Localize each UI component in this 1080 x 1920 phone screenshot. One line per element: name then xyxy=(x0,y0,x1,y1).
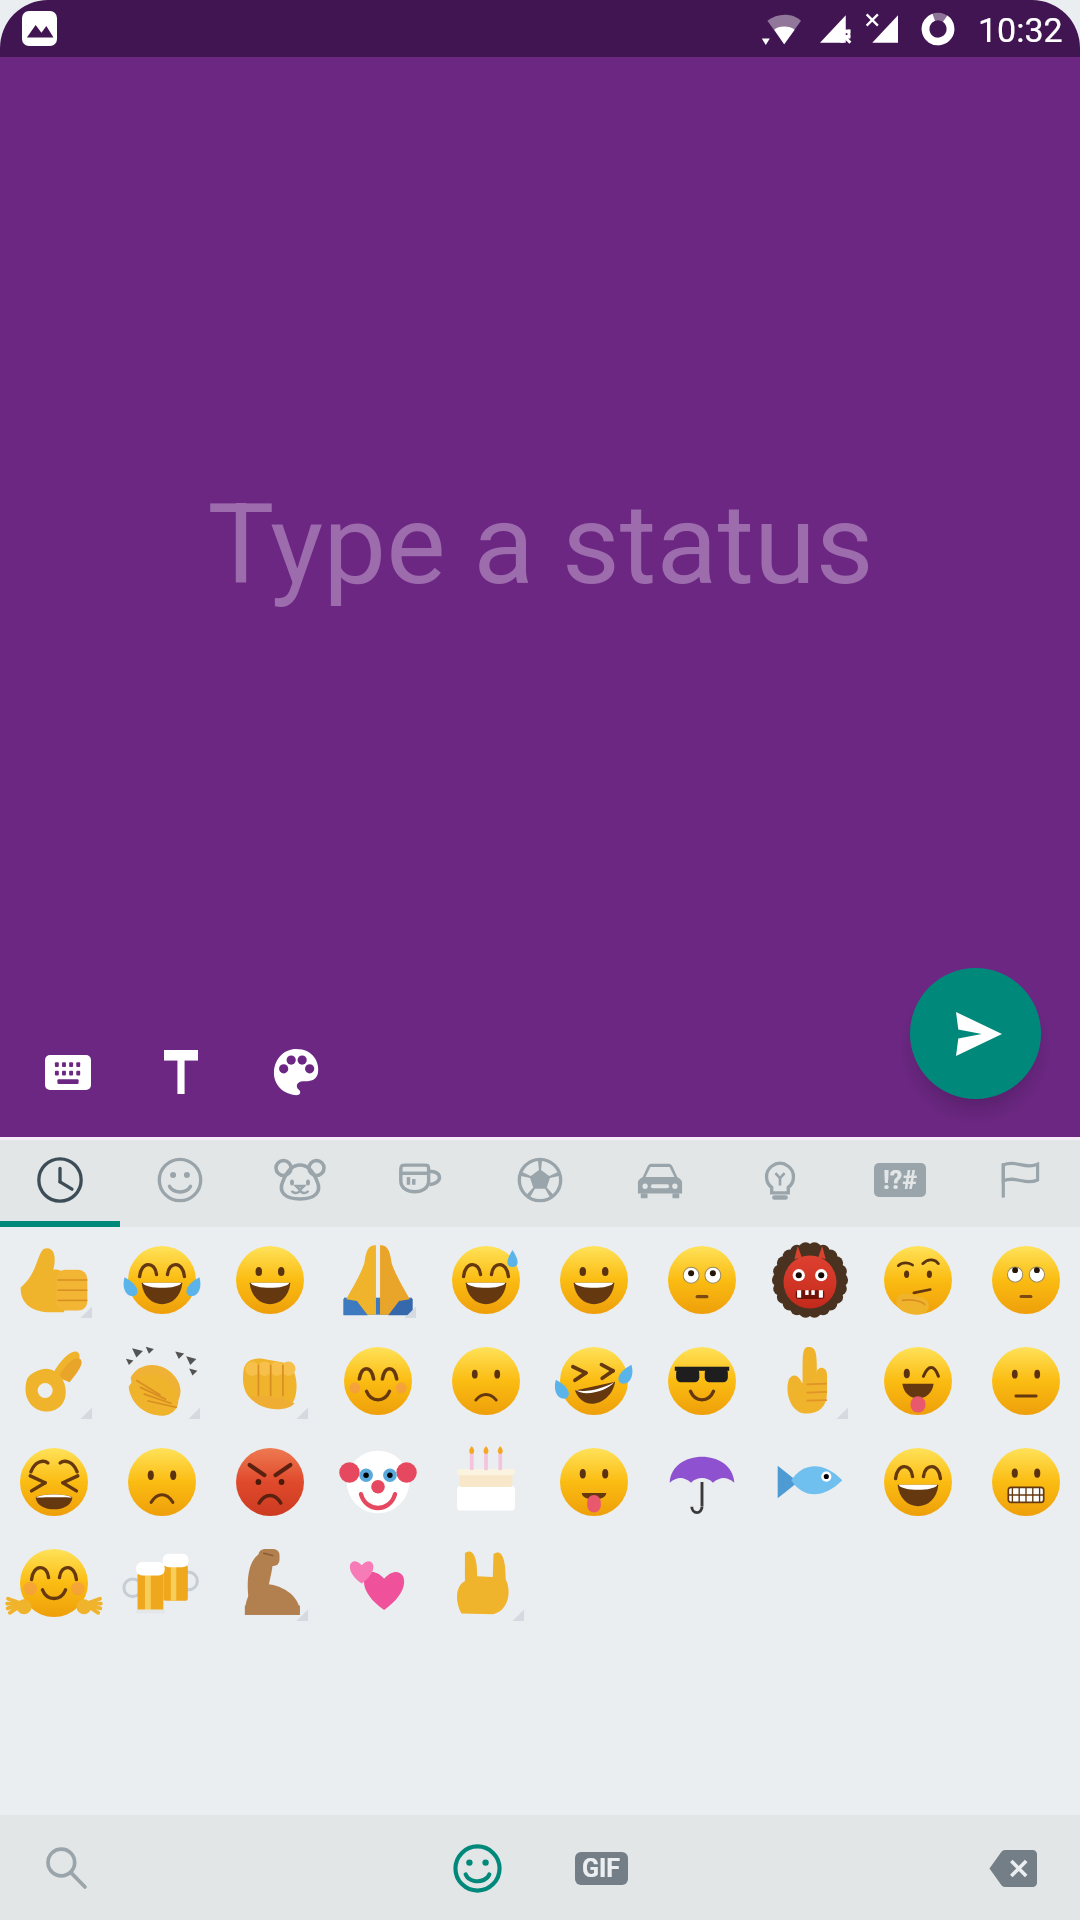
button[interactable]: Recent xyxy=(0,1140,120,1227)
button[interactable]: Backspace xyxy=(969,1824,1057,1912)
staticText: 10:32 xyxy=(978,10,1063,50)
button[interactable]: Text style xyxy=(142,1033,220,1111)
button[interactable]: Activity xyxy=(480,1140,600,1227)
button[interactable]: Send xyxy=(910,968,1041,1099)
button[interactable]: Smileys xyxy=(120,1140,240,1227)
button[interactable]: Emoji xyxy=(433,1824,521,1912)
button[interactable]: Objects xyxy=(720,1140,840,1227)
button[interactable]: Keyboard xyxy=(29,1033,107,1111)
staticText: Type a status xyxy=(207,479,874,610)
button[interactable]: Travel xyxy=(600,1140,720,1227)
button[interactable]: Symbols xyxy=(840,1140,960,1227)
button[interactable]: Search xyxy=(22,1824,110,1912)
button[interactable]: Animals xyxy=(240,1140,360,1227)
button[interactable]: Flags xyxy=(960,1140,1080,1227)
button[interactable]: Food xyxy=(360,1140,480,1227)
button[interactable]: GIF xyxy=(557,1824,645,1912)
staticText: !?# xyxy=(883,1166,918,1195)
button[interactable]: Background colour xyxy=(257,1033,335,1111)
staticText: GIF xyxy=(582,1854,621,1883)
